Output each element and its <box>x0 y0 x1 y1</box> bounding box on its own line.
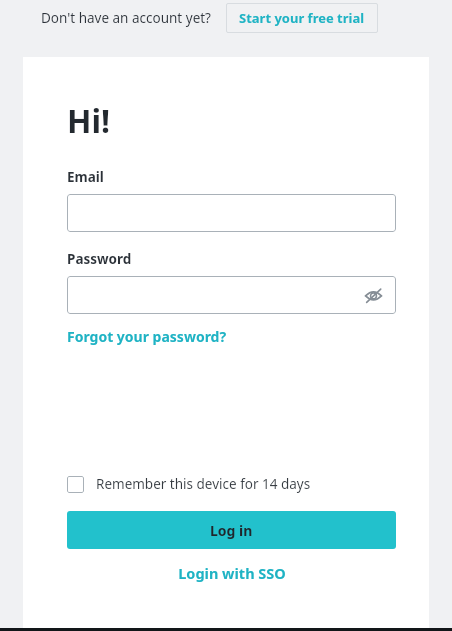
button[interactable]: Log in <box>67 511 396 549</box>
button[interactable]: Remember this device for 14 days <box>67 473 311 495</box>
button[interactable]: Login with SSO <box>67 563 396 583</box>
staticText: Email <box>67 168 104 186</box>
staticText: Don't have an account yet? <box>41 9 211 27</box>
button[interactable]: Show password <box>360 282 386 308</box>
staticText: Remember this device for 14 days <box>96 475 311 493</box>
button[interactable]: Show password <box>67 276 396 314</box>
staticText: Forgot your password? <box>67 327 227 346</box>
staticText: Hi! <box>67 99 111 143</box>
button[interactable]: Forgot your password? <box>67 327 227 346</box>
staticText: Log in <box>210 521 253 540</box>
button[interactable] <box>67 194 396 232</box>
button[interactable]: Start your free trial <box>226 3 378 33</box>
staticText: Password <box>67 250 132 268</box>
staticText: Start your free trial <box>239 9 365 27</box>
staticText: Login with SSO <box>178 563 286 583</box>
